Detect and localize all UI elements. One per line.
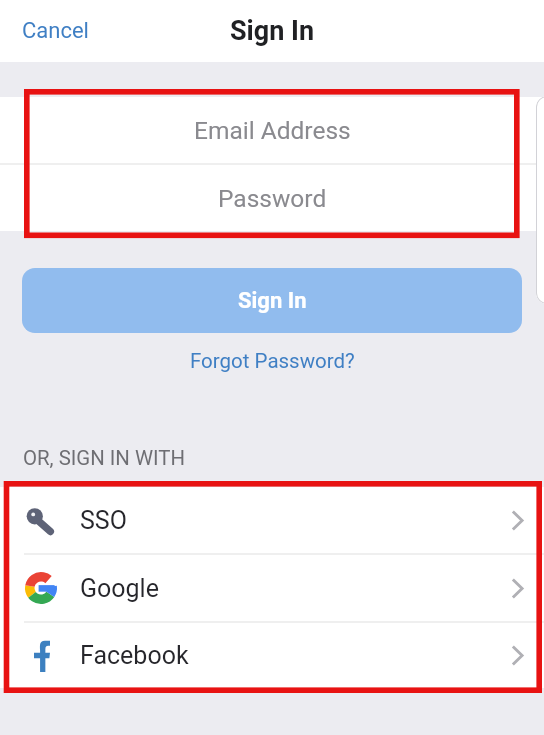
button[interactable]: Sign In xyxy=(22,268,522,333)
staticText: SSO xyxy=(80,506,127,535)
staticText: Forgot Password? xyxy=(190,349,355,373)
staticText: Sign In xyxy=(230,15,315,47)
button[interactable]: SSO xyxy=(0,487,544,553)
button[interactable]: Email Address xyxy=(0,97,544,163)
staticText: Google xyxy=(80,574,159,603)
staticText: Password xyxy=(218,184,327,213)
staticText: Cancel xyxy=(22,18,89,44)
staticText: Email Address xyxy=(194,116,351,145)
button[interactable]: Cancel xyxy=(12,10,99,52)
button[interactable]: Facebook xyxy=(0,623,544,688)
button[interactable]: Google xyxy=(0,555,544,621)
button[interactable]: Password xyxy=(0,165,544,231)
staticText: Facebook xyxy=(80,641,189,670)
staticText: OR, SIGN IN WITH xyxy=(23,446,186,470)
staticText: Sign In xyxy=(238,288,307,314)
button[interactable]: Forgot Password? xyxy=(180,345,365,377)
